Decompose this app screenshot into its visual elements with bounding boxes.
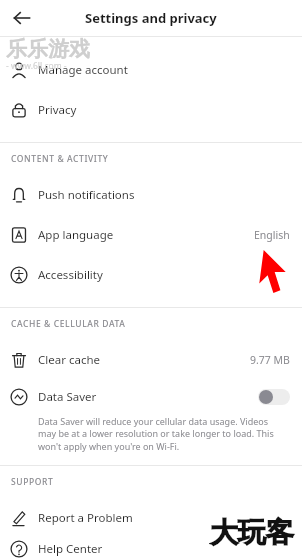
button[interactable]: Accessibility xyxy=(0,255,302,295)
button[interactable]: Manage account xyxy=(0,50,302,90)
button[interactable]: Data Saver xyxy=(0,380,302,414)
staticText: English xyxy=(254,228,290,242)
staticText: CACHE & CELLULAR DATA xyxy=(11,318,126,330)
staticText: 9.77 MB xyxy=(250,353,290,367)
staticText: Data Saver xyxy=(38,389,258,405)
staticText: SUPPORT xyxy=(11,476,54,488)
button[interactable]: Privacy xyxy=(0,90,302,130)
button[interactable]: Clear cache xyxy=(0,340,302,380)
button[interactable]: Push notifications xyxy=(0,175,302,215)
staticText: Help Center xyxy=(38,541,290,557)
staticText: Push notifications xyxy=(38,187,290,203)
staticText: 大玩客 xyxy=(210,515,294,550)
staticText: Privacy xyxy=(38,102,290,118)
button[interactable]: Back xyxy=(4,0,40,36)
staticText: Settings and privacy xyxy=(85,9,217,27)
staticText: Clear cache xyxy=(38,352,250,368)
button[interactable]: Report a Problem xyxy=(0,498,302,538)
staticText: 乐乐游戏 xyxy=(6,36,90,62)
staticText: Manage account xyxy=(38,62,290,78)
staticText: CONTENT & ACTIVITY xyxy=(11,153,109,165)
staticText: - www.6ll.com - xyxy=(6,60,67,72)
staticText: Accessibility xyxy=(38,267,290,283)
staticText: Report a Problem xyxy=(38,510,290,526)
button[interactable]: Help Center xyxy=(0,538,302,560)
button[interactable]: Data Saver toggle xyxy=(258,389,290,405)
button[interactable]: App language xyxy=(0,215,302,255)
staticText: Data Saver will reduce your cellular dat… xyxy=(38,415,288,453)
staticText: App language xyxy=(38,227,254,243)
